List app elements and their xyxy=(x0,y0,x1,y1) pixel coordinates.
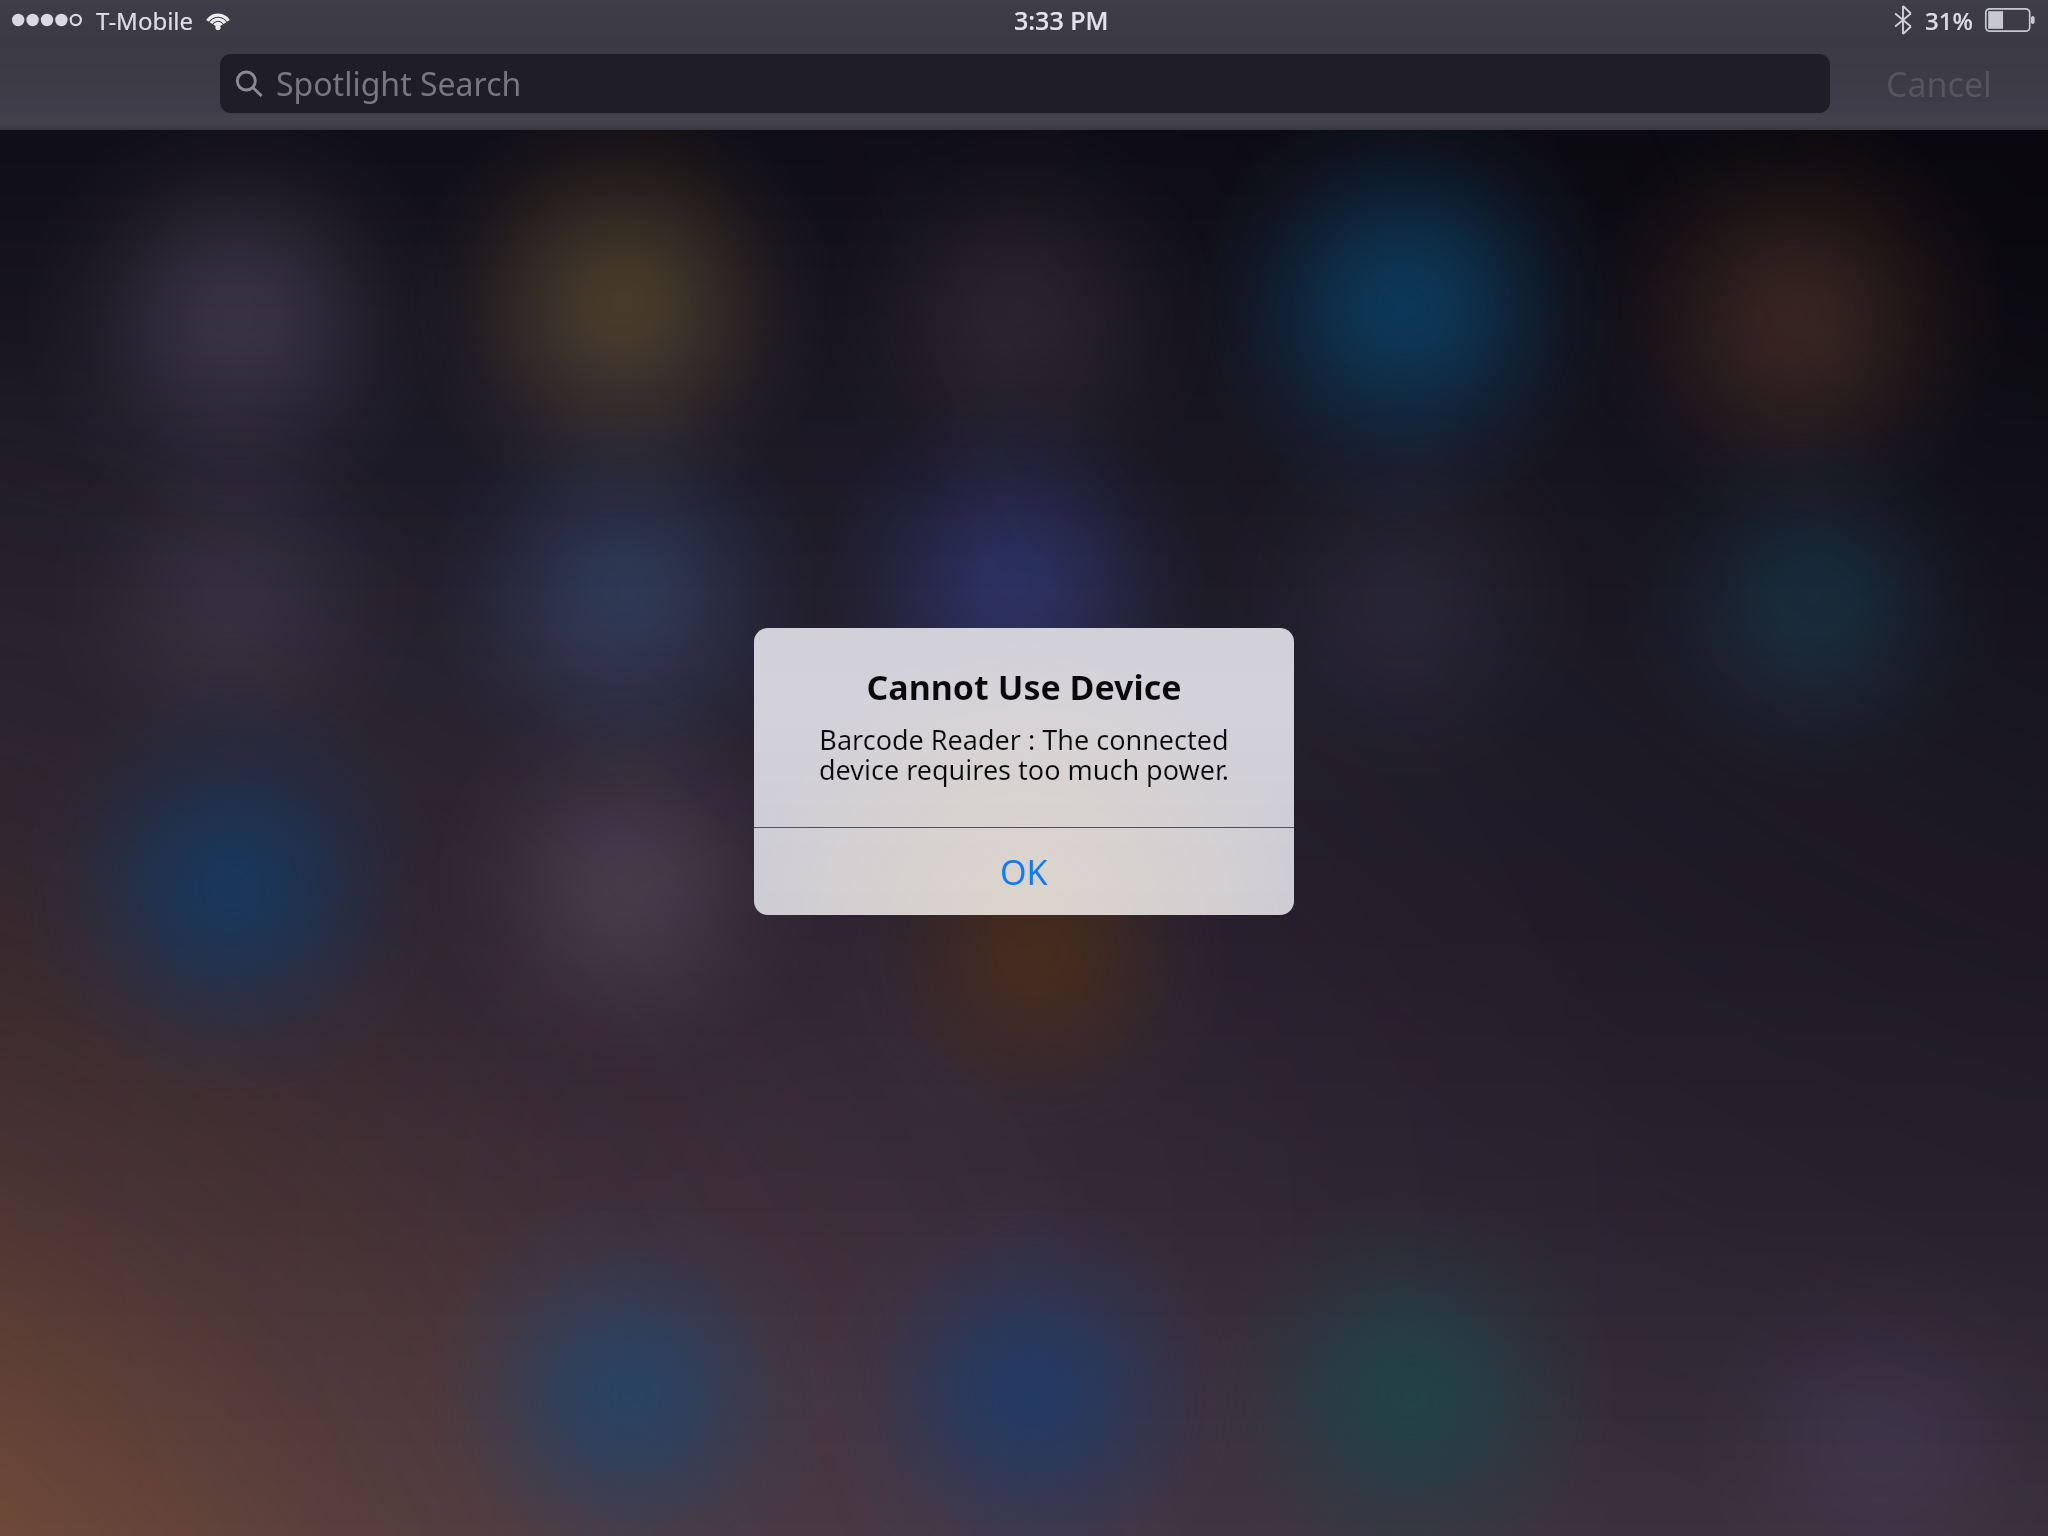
button[interactable]: OK xyxy=(754,828,1294,915)
staticText: T-Mobile xyxy=(96,4,194,37)
staticText: Cancel xyxy=(1886,61,1992,107)
staticText: 3:33 PM xyxy=(1014,3,1109,37)
staticText: 31% xyxy=(1925,4,1973,37)
staticText: Spotlight Search xyxy=(276,62,522,106)
staticText: Cannot Use Device xyxy=(754,664,1294,710)
staticText: Barcode Reader : The connected device re… xyxy=(770,721,1278,787)
button[interactable]: Spotlight Search field xyxy=(220,54,1830,113)
button[interactable]: Cancel xyxy=(1830,40,2048,127)
staticText: OK xyxy=(1000,849,1048,895)
